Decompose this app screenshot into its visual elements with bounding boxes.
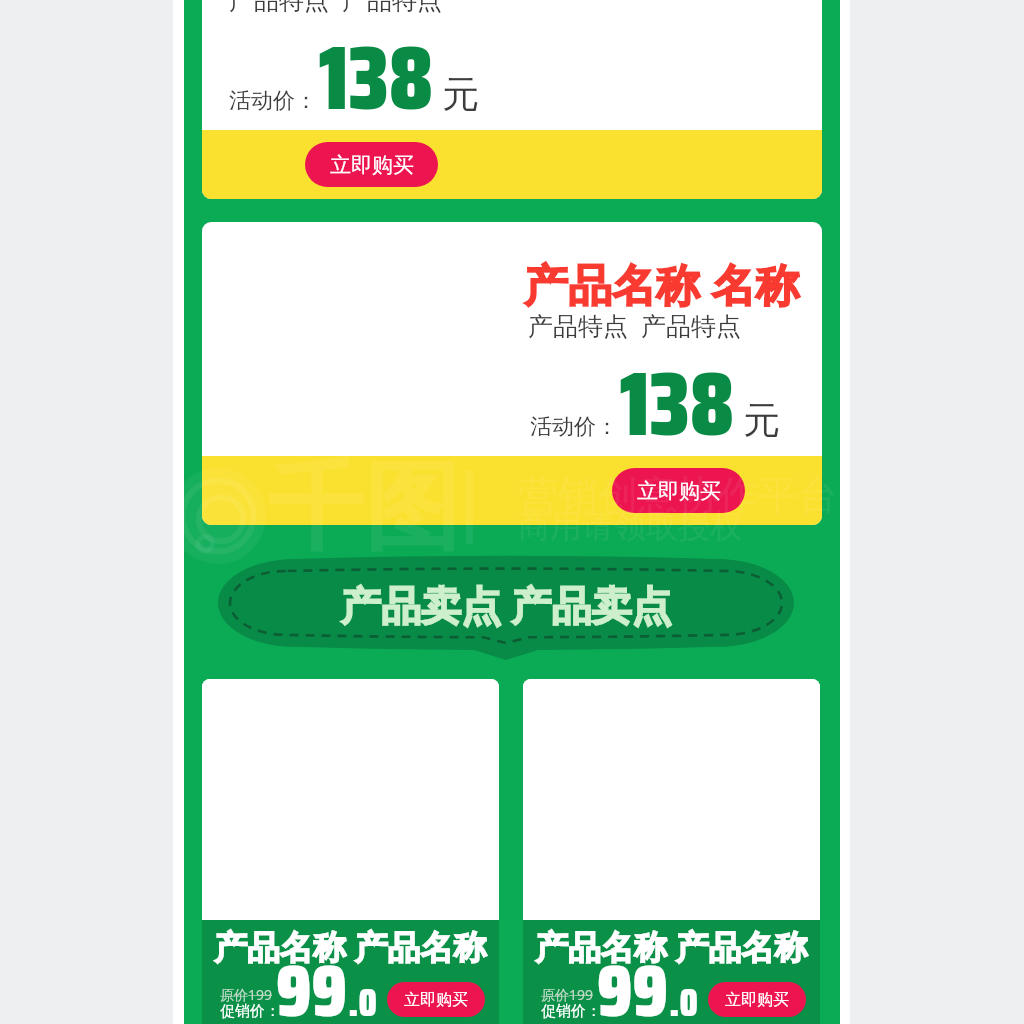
staticText: 活动价：	[229, 87, 317, 115]
button[interactable]: 产品名称 产品名称 促销价 99.0	[202, 679, 499, 1024]
staticText: 立即购买	[637, 478, 721, 504]
staticText: 产品名称 名称	[524, 254, 800, 314]
staticText: 促销价：	[541, 1002, 601, 1021]
staticText: 产品名称 产品名称	[535, 924, 808, 969]
staticText: 立即购买	[404, 990, 468, 1010]
staticText: 产品卖点 产品卖点	[341, 577, 672, 632]
staticText: 原价199	[541, 985, 594, 1004]
staticText: 产品名称 产品名称	[214, 924, 487, 969]
staticText: 元	[743, 397, 780, 444]
staticText: 138	[319, 7, 434, 149]
button[interactable]: 立即购买	[708, 982, 806, 1017]
button[interactable]: 产品图片	[202, 679, 499, 920]
button[interactable]: 产品卖点 产品卖点	[218, 559, 794, 660]
staticText: 千图	[268, 448, 460, 569]
staticText: 活动价：	[530, 413, 618, 441]
staticText: 产品特点 产品特点	[229, 0, 443, 16]
staticText: .0	[348, 973, 377, 1024]
staticText: 营销创意协作平台	[518, 470, 838, 520]
staticText: 立即购买	[330, 152, 414, 178]
staticText: 99	[276, 932, 348, 1024]
button[interactable]: 产品名称 名称	[202, 0, 822, 199]
staticText: .0	[669, 973, 698, 1024]
staticText: 促销价：	[220, 1002, 280, 1021]
button[interactable]: 产品图片	[523, 679, 820, 920]
staticText: 138	[620, 333, 735, 475]
button[interactable]: 立即购买	[612, 468, 745, 513]
button[interactable]: 产品名称 名称	[202, 222, 822, 525]
staticText: 商用请领取授权	[518, 506, 742, 546]
button[interactable]: 立即购买	[387, 982, 485, 1017]
staticText: 原价199	[220, 985, 273, 1004]
staticText: 立即购买	[725, 990, 789, 1010]
staticText: 元	[442, 71, 479, 118]
button[interactable]: 产品名称 产品名称 促销价 99.0	[523, 679, 820, 1024]
staticText: 产品特点 产品特点	[528, 308, 742, 342]
staticText: 99	[597, 932, 669, 1024]
button[interactable]: 立即购买	[305, 142, 438, 187]
